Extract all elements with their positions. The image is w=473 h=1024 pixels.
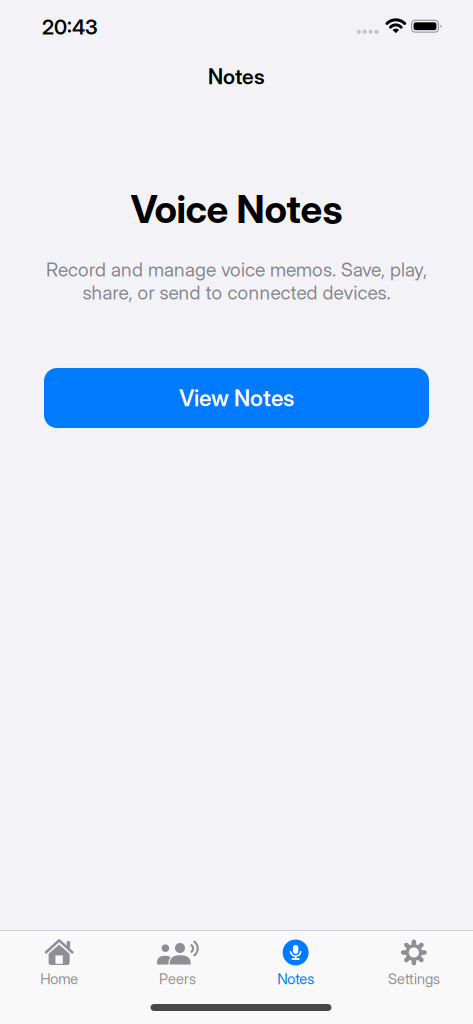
button[interactable]: Peers <box>118 939 236 988</box>
staticText: share, or send to connected devices. <box>82 281 390 304</box>
staticText: Home <box>40 970 78 988</box>
staticText: Voice Notes <box>130 186 342 232</box>
staticText: Notes <box>208 64 265 89</box>
button[interactable]: Notes <box>236 939 355 988</box>
button[interactable]: Home <box>0 939 118 988</box>
staticText: View Notes <box>179 384 294 411</box>
button[interactable]: Settings <box>355 939 473 988</box>
button[interactable]: View Notes <box>44 368 429 428</box>
staticText: Record and manage voice memos. Save, pla… <box>46 258 427 281</box>
staticText: Settings <box>388 970 440 988</box>
staticText: 20:43 <box>42 15 98 39</box>
staticText: Notes <box>277 970 314 988</box>
staticText: Peers <box>159 970 196 988</box>
